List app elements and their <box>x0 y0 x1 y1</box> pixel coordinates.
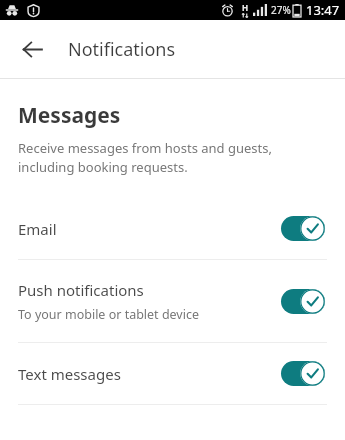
staticText: Messages <box>18 101 121 130</box>
staticText: Push notifications <box>18 280 144 300</box>
staticText: Text messages <box>18 364 121 384</box>
staticText: 13:47 <box>306 1 340 19</box>
staticText: Notifications <box>68 37 176 62</box>
staticText: 27% <box>271 3 291 17</box>
button[interactable]: Back <box>12 29 52 69</box>
staticText: To your mobile or tablet device <box>18 306 199 323</box>
button[interactable]: Toggle on <box>281 361 325 386</box>
button[interactable]: Text messages <box>0 343 345 404</box>
button[interactable]: Toggle on <box>281 216 325 241</box>
staticText: H <box>242 2 249 13</box>
staticText: Email <box>18 219 57 239</box>
staticText: Receive messages from hosts and guests, … <box>18 139 272 176</box>
button[interactable]: Toggle on <box>281 289 325 314</box>
button[interactable]: Push notifications <box>0 260 345 342</box>
button[interactable]: Email <box>0 198 345 259</box>
